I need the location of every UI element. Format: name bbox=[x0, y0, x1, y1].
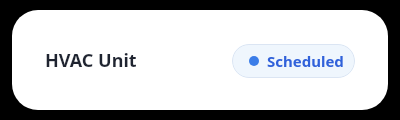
button[interactable]: HVAC Unit bbox=[12, 10, 388, 110]
button[interactable]: Status indicator bbox=[232, 44, 355, 78]
staticText: HVAC Unit bbox=[45, 48, 137, 73]
other: Status indicator bbox=[249, 56, 259, 66]
staticText: Scheduled bbox=[267, 51, 344, 71]
